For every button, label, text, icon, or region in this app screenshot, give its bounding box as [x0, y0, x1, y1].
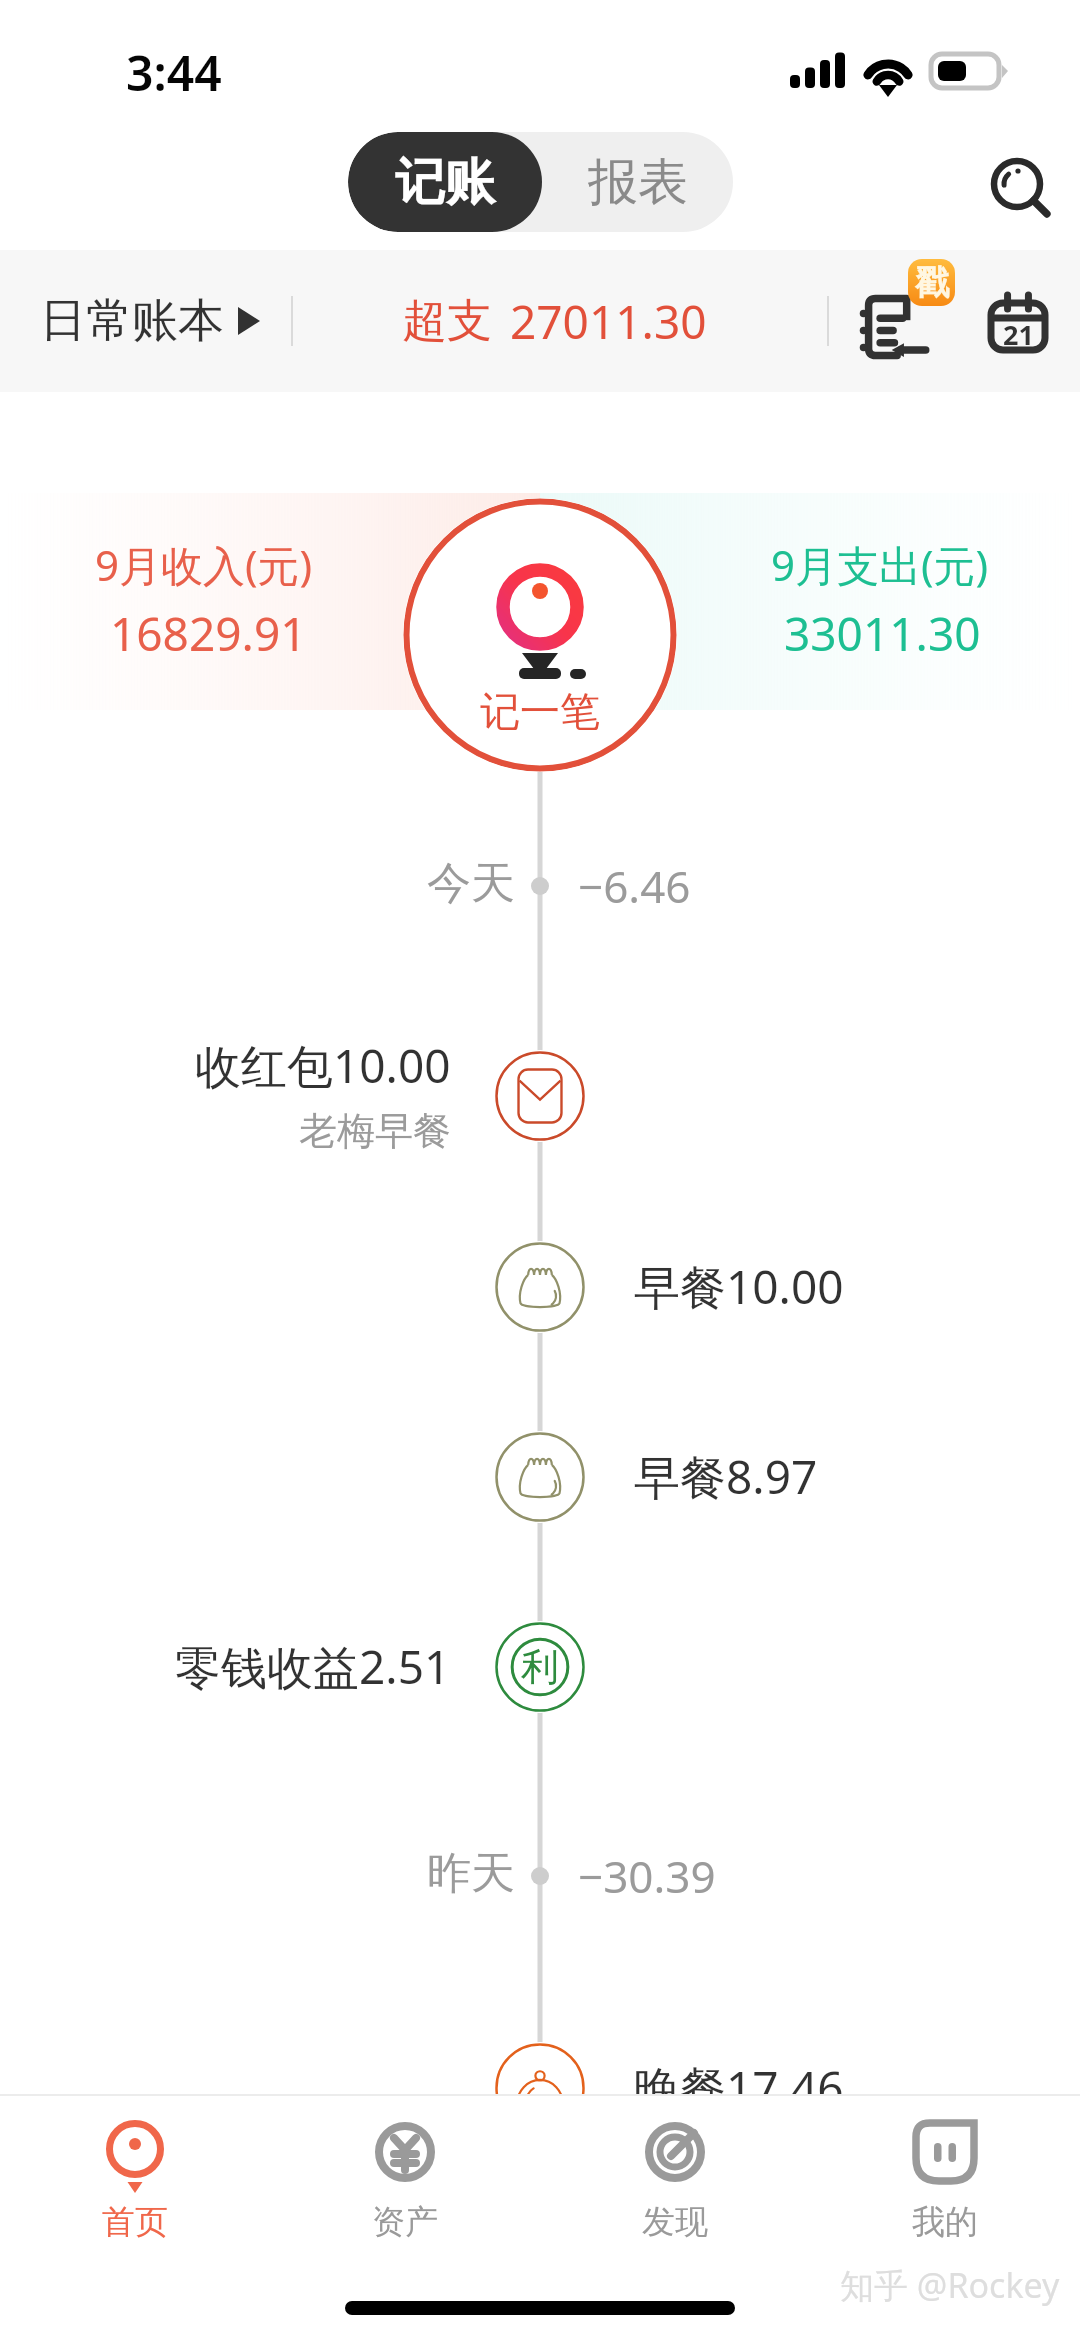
staticText: 记一笔	[480, 686, 600, 736]
staticText: 21	[1003, 316, 1034, 353]
button[interactable]: 早餐8.97	[634, 1445, 818, 1508]
staticText: 资产	[372, 2201, 438, 2243]
button[interactable]: 我的	[810, 2114, 1080, 2243]
button[interactable]: Search	[972, 140, 1062, 230]
button[interactable]: 报表	[542, 132, 733, 232]
button[interactable]: Calendar	[988, 293, 1048, 353]
staticText: 首页	[102, 2201, 168, 2243]
button[interactable]: 资产	[270, 2114, 540, 2243]
staticText: 超支	[402, 293, 492, 350]
button[interactable]	[494, 1241, 586, 1333]
staticText: 晚餐17.46	[634, 2056, 844, 2094]
staticText: 3:44	[126, 40, 222, 105]
button[interactable]: 日常账本	[40, 250, 260, 392]
staticText: 老梅早餐	[299, 1107, 451, 1155]
staticText: 昨天	[427, 1846, 515, 1901]
staticText: 早餐10.00	[634, 1255, 844, 1318]
staticText: 戳	[915, 261, 949, 304]
staticText: −6.46	[578, 856, 691, 916]
button[interactable]: 记一笔	[403, 498, 677, 772]
button[interactable]: 早餐10.00	[634, 1255, 844, 1318]
staticText: 我的	[912, 2201, 978, 2243]
button[interactable]	[494, 1050, 586, 1142]
staticText: 早餐8.97	[634, 1445, 818, 1508]
button[interactable]: 利	[494, 1621, 586, 1713]
button[interactable]: Import bills	[855, 293, 923, 361]
button[interactable]	[494, 1431, 586, 1523]
button[interactable]: 零钱收益2.51	[51, 1635, 451, 1698]
staticText: 知乎 @Rockey	[840, 2262, 1060, 2308]
staticText: 9月支出(元)	[771, 536, 989, 593]
staticText: 零钱收益2.51	[175, 1635, 451, 1698]
staticText: 33011.30	[784, 602, 981, 665]
staticText: 报表	[588, 151, 688, 214]
staticText: 记账	[395, 151, 495, 214]
staticText: −30.39	[578, 1846, 716, 1906]
staticText: 利	[521, 1643, 559, 1691]
staticText: 9月收入(元)	[95, 536, 313, 593]
button[interactable]: 收红包10.00	[51, 1034, 451, 1155]
staticText: 发现	[642, 2201, 708, 2243]
button[interactable]: 记账	[348, 132, 542, 232]
button[interactable]	[494, 2042, 586, 2094]
button[interactable]: 晚餐17.46	[634, 2056, 844, 2094]
button[interactable]: 发现	[540, 2114, 810, 2243]
staticText: 16829.91	[110, 602, 307, 665]
staticText: 27011.30	[510, 290, 707, 353]
button[interactable]: 首页	[0, 2114, 270, 2243]
staticText: 收红包10.00	[195, 1034, 451, 1097]
staticText: 日常账本	[40, 292, 224, 350]
staticText: 今天	[427, 856, 515, 911]
